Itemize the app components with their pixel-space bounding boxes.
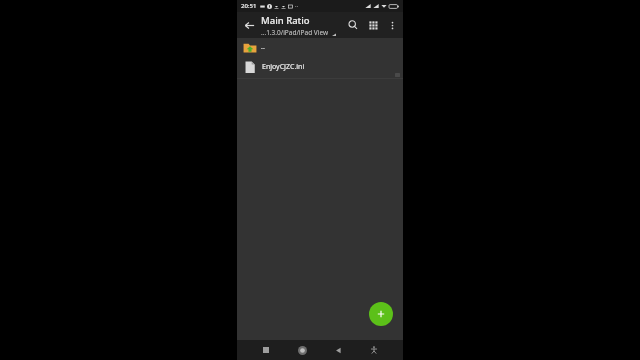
button[interactable]: EnjoyCJZC.ini	[237, 56, 403, 78]
button[interactable]: Parent folder	[237, 38, 403, 56]
button[interactable]: Back	[328, 340, 348, 360]
button[interactable]: Accessibility	[364, 340, 384, 360]
staticText: …1.3.0/iPad/iPad View	[261, 28, 329, 37]
staticText: ..	[261, 42, 265, 52]
button[interactable]: More options	[383, 16, 401, 34]
staticText: Main Ratio	[261, 14, 310, 27]
staticText: ··	[295, 2, 299, 10]
button[interactable]: Back	[237, 13, 261, 37]
button[interactable]: Search	[343, 15, 363, 35]
button[interactable]: Grid view	[363, 15, 383, 35]
button[interactable]: Home	[292, 340, 312, 360]
staticText: 20:51	[241, 2, 257, 10]
button[interactable]: Recent apps	[256, 340, 276, 360]
staticText: EnjoyCJZC.ini	[262, 62, 305, 72]
button[interactable]: Main Ratio	[261, 14, 343, 37]
button[interactable]: Add	[369, 302, 393, 326]
